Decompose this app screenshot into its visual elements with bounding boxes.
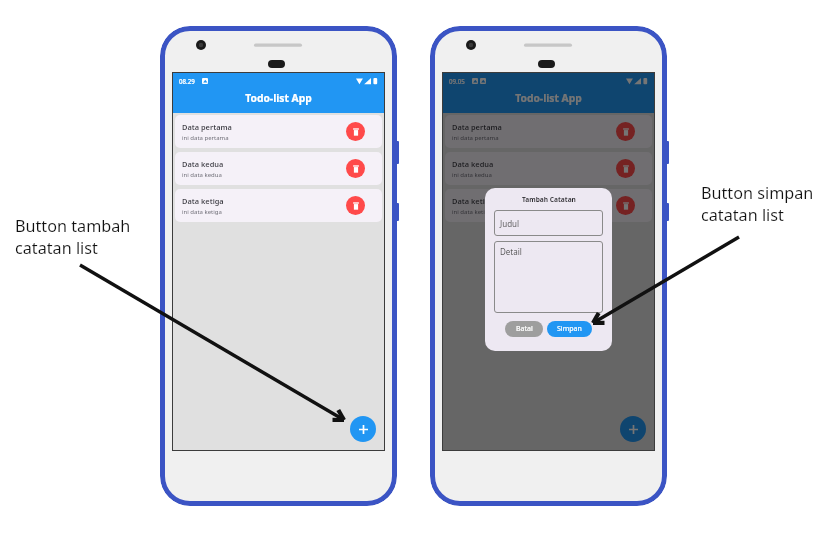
staticText: 09.05	[449, 77, 465, 85]
button[interactable]: Hapus	[346, 159, 365, 178]
button[interactable]: Data kedua	[175, 152, 382, 185]
staticText: ini data kedua	[452, 171, 492, 179]
button[interactable]: Simpan	[547, 321, 592, 337]
staticText: ini data ketiga	[182, 208, 222, 216]
button[interactable]: Hapus	[346, 196, 365, 215]
staticText: Data ketiga	[182, 196, 224, 206]
staticText: Tambah Catatan	[522, 195, 576, 204]
staticText: Data kedua	[452, 159, 494, 169]
button[interactable]: Data ketiga	[445, 189, 652, 222]
staticText: Data pertama	[452, 122, 502, 132]
staticText: Batal	[516, 324, 533, 334]
button[interactable]: Hapus	[616, 196, 635, 215]
staticText: ini data ketiga	[452, 208, 492, 216]
button[interactable]: Hapus	[616, 122, 635, 141]
staticText: Data kedua	[182, 159, 224, 169]
button[interactable]: Judul	[494, 210, 603, 236]
button[interactable]: Tambah catatan	[350, 416, 376, 442]
staticText: Todo-list App	[245, 91, 312, 105]
button[interactable]: Data pertama	[175, 115, 382, 148]
staticText: Simpan	[557, 324, 582, 334]
button[interactable]: Hapus	[616, 159, 635, 178]
staticText: Todo-list App	[515, 91, 582, 105]
staticText: Button tambah catatan list	[15, 215, 131, 259]
staticText: 08.29	[179, 77, 195, 85]
button[interactable]: Batal	[505, 321, 543, 337]
button[interactable]: Data pertama	[445, 115, 652, 148]
button[interactable]: Tambah catatan	[620, 416, 646, 442]
staticText: Button simpan catatan list	[701, 182, 814, 226]
staticText: ini data pertama	[452, 134, 499, 142]
staticText: Data ketiga	[452, 196, 494, 206]
staticText: ini data kedua	[182, 171, 222, 179]
button[interactable]: Detail	[494, 241, 603, 313]
staticText: ini data pertama	[182, 134, 229, 142]
staticText: Data pertama	[182, 122, 232, 132]
button[interactable]: Data ketiga	[175, 189, 382, 222]
staticText: Judul	[500, 218, 520, 229]
button[interactable]: Hapus	[346, 122, 365, 141]
button[interactable]: Data kedua	[445, 152, 652, 185]
staticText: Detail	[500, 246, 522, 257]
